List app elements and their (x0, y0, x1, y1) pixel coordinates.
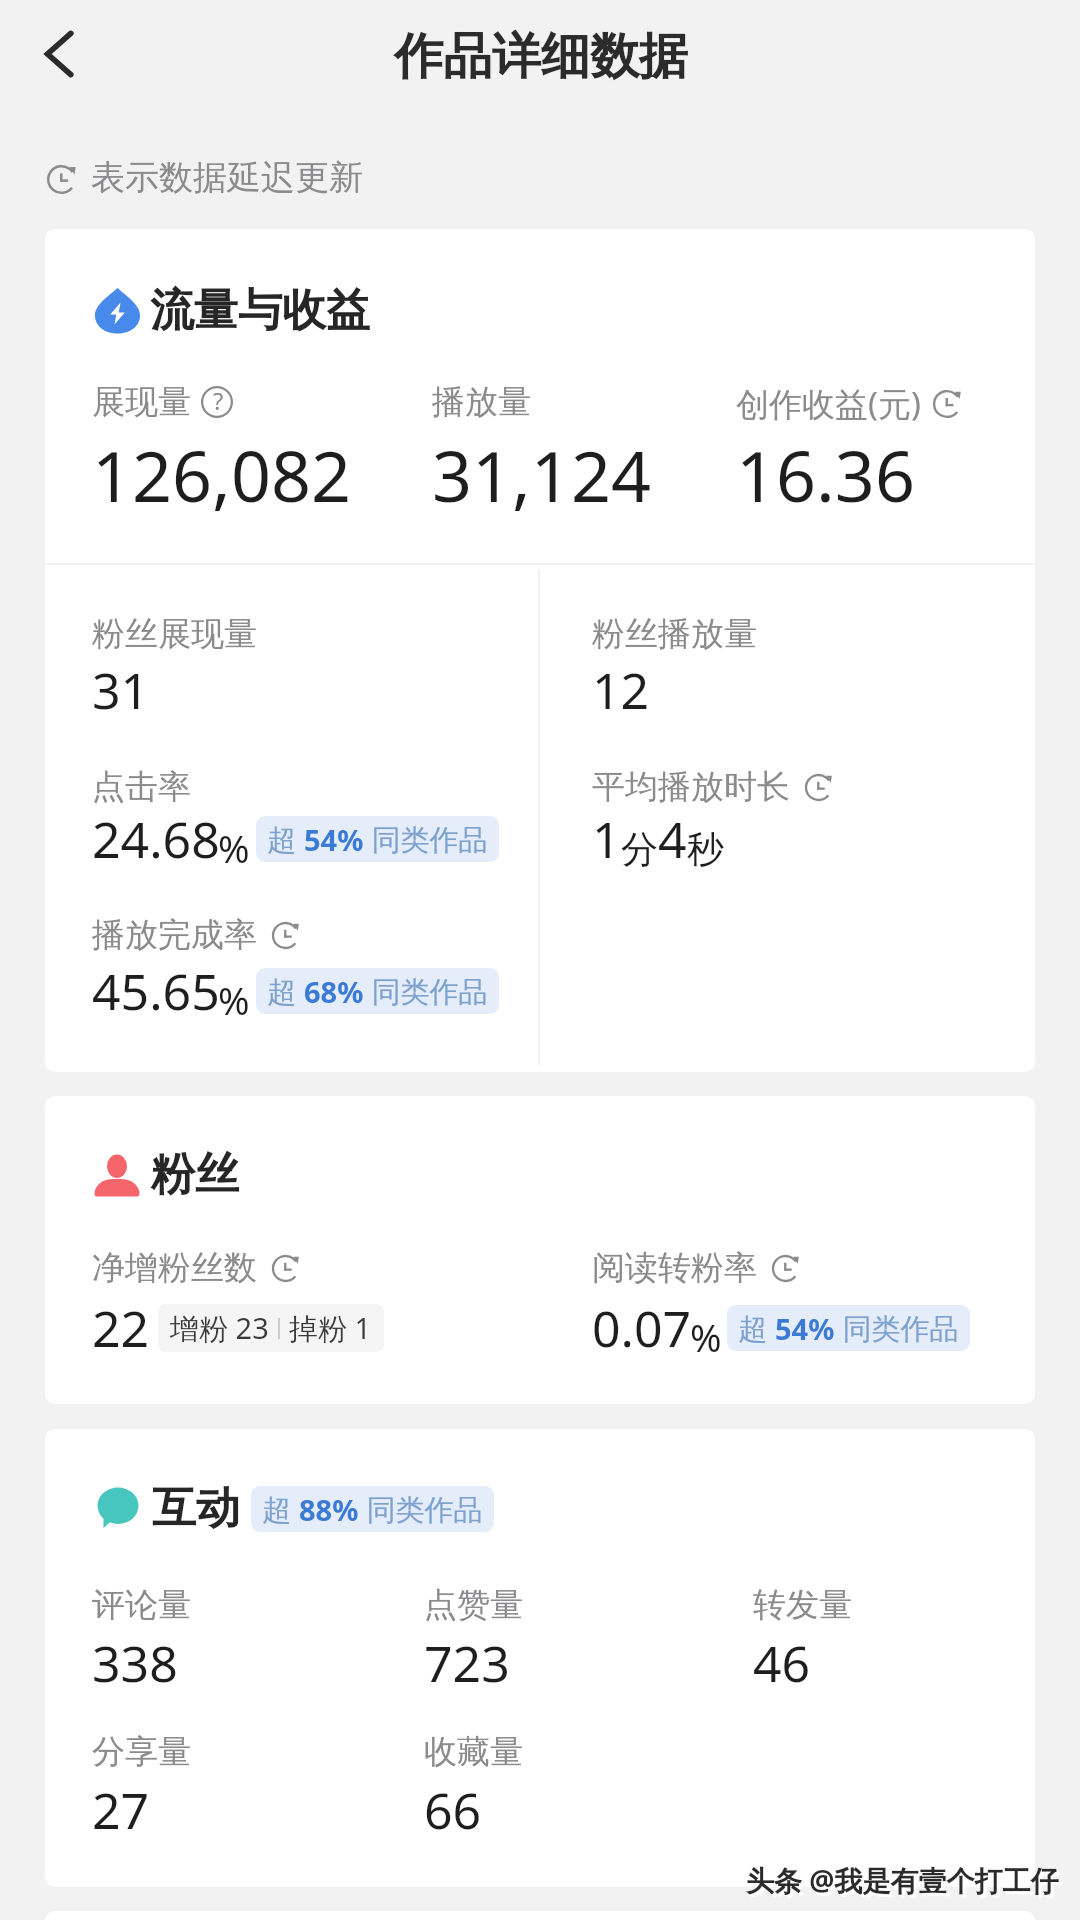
staticText: 分 (621, 826, 658, 873)
staticText: 作品详细数据 (394, 26, 688, 88)
staticText: 338 (92, 1629, 178, 1697)
staticText: 24.68 (92, 805, 220, 873)
staticText: % (218, 974, 250, 1026)
staticText: 0.07 (592, 1294, 692, 1362)
staticText: ? (213, 385, 224, 417)
staticText: 分享量 (92, 1731, 191, 1773)
staticText: 31 (92, 656, 150, 724)
staticText: 评论量 (92, 1584, 191, 1626)
staticText: 54% (304, 820, 364, 859)
staticText: 平均播放时长 (592, 766, 790, 808)
staticText: 超 (738, 1308, 775, 1348)
staticText: 头条 @我是有壹个打工仔 (746, 1861, 1059, 1899)
button[interactable]: 粉丝 (45, 1096, 1035, 1404)
button[interactable]: 超 (262, 1489, 483, 1529)
staticText: 粉丝展现量 (92, 613, 257, 655)
button[interactable]: 互动 (45, 1429, 1035, 1887)
staticText: 粉丝 (151, 1147, 239, 1202)
staticText: 同类作品 (835, 1308, 959, 1348)
staticText: 粉丝播放量 (592, 613, 757, 655)
staticText: 掉粉 1 (289, 1308, 372, 1348)
staticText: 22 (92, 1294, 150, 1362)
staticText: 54% (775, 1309, 835, 1348)
button[interactable]: Back (24, 18, 96, 90)
staticText: 68% (304, 972, 364, 1011)
staticText: % (218, 822, 250, 874)
staticText: 66 (424, 1776, 482, 1844)
staticText: 46 (753, 1629, 811, 1697)
staticText: 秒 (687, 826, 724, 873)
staticText: 互动 (152, 1481, 240, 1536)
staticText: 流量与收益 (150, 283, 370, 338)
staticText: 头条 @我是有壹个打工仔 (749, 1864, 1062, 1902)
button[interactable]: 超 (738, 1308, 959, 1348)
staticText: 27 (92, 1776, 150, 1844)
staticText: 同类作品 (364, 819, 488, 859)
staticText: 超 (267, 971, 304, 1011)
staticText: 播放量 (432, 381, 531, 423)
staticText: 增粉 23 (170, 1308, 269, 1348)
staticText: 31,124 (432, 427, 651, 522)
staticText: 超 (262, 1489, 299, 1529)
staticText: 点赞量 (424, 1584, 523, 1626)
staticText: 同类作品 (359, 1489, 483, 1529)
button[interactable]: 超 (267, 971, 488, 1011)
staticText: 12 (592, 656, 650, 724)
staticText: 播放完成率 (92, 914, 257, 956)
staticText: 45.65 (92, 957, 220, 1025)
button[interactable]: What is this metric? (201, 386, 233, 418)
staticText: % (690, 1311, 722, 1363)
staticText: 1 (592, 805, 621, 873)
staticText: 88% (299, 1490, 359, 1529)
staticText: 超 (267, 819, 304, 859)
staticText: 16.36 (736, 427, 915, 522)
staticText: 同类作品 (364, 971, 488, 1011)
staticText: 表示数据延迟更新 (91, 156, 363, 199)
staticText: 转发量 (753, 1584, 852, 1626)
staticText: 阅读转粉率 (592, 1247, 757, 1289)
staticText: 收藏量 (424, 1731, 523, 1773)
button[interactable]: 超 (267, 819, 488, 859)
staticText: 723 (424, 1629, 510, 1697)
staticText: 净增粉丝数 (92, 1247, 257, 1289)
staticText: 126,082 (92, 427, 351, 522)
staticText: 点击率 (92, 766, 191, 808)
staticText: 4 (658, 805, 687, 873)
staticText: 创作收益(元) (736, 381, 921, 426)
staticText: 展现量 (92, 381, 191, 423)
button[interactable]: 流量与收益 (45, 229, 1035, 1072)
